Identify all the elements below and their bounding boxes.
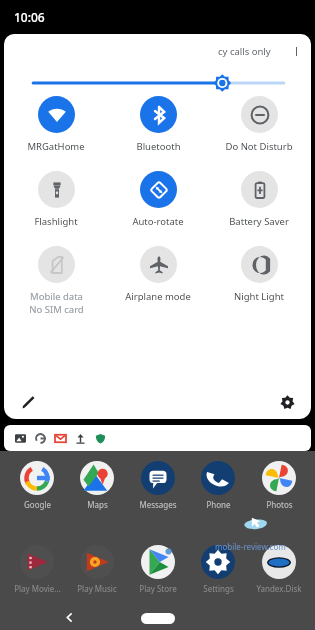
button[interactable]: Maps — [69, 455, 125, 510]
button[interactable]: Home — [141, 613, 175, 624]
button[interactable]: Settings — [275, 390, 299, 414]
button[interactable]: Settings — [190, 539, 246, 594]
staticText: Play Store — [139, 583, 177, 594]
staticText: mobile-review.com — [215, 541, 286, 552]
staticText: Play Movie... — [14, 583, 61, 594]
button[interactable]: Do Not Disturb — [210, 96, 308, 153]
button[interactable]: Photos — [251, 455, 307, 510]
button[interactable]: More options — [289, 44, 303, 58]
staticText: Mobile data — [30, 290, 83, 303]
button[interactable]: MRGatHome — [7, 96, 105, 153]
staticText: MRGatHome — [27, 140, 85, 153]
staticText: Messages — [139, 499, 177, 510]
staticText: Settings — [203, 583, 234, 594]
button[interactable]: Play Movie... — [9, 539, 65, 594]
button[interactable]: Play Store — [130, 539, 186, 594]
button[interactable]: Messages — [130, 455, 186, 510]
staticText: No SIM card — [29, 303, 84, 316]
staticText: Do Not Disturb — [225, 140, 293, 153]
button[interactable]: Auto-rotate — [109, 171, 207, 228]
staticText: Google — [24, 499, 51, 510]
button[interactable]: Flashlight — [7, 171, 105, 228]
button[interactable]: Brightness — [4, 72, 311, 94]
staticText: cy calls only — [218, 45, 271, 58]
staticText: Phone — [206, 499, 231, 510]
button[interactable] — [4, 425, 311, 451]
button[interactable]: Airplane mode — [109, 246, 207, 303]
staticText: Photos — [266, 499, 293, 510]
button[interactable]: Google — [9, 455, 65, 510]
staticText: Play Music — [77, 583, 117, 594]
staticText: Bluetooth — [136, 140, 181, 153]
staticText: Night Light — [234, 290, 284, 303]
staticText: Yandex.Disk — [256, 583, 302, 594]
button[interactable]: Bluetooth — [109, 96, 207, 153]
button[interactable]: Yandex.Disk — [251, 539, 307, 594]
button[interactable]: Play Music — [69, 539, 125, 594]
staticText: Maps — [87, 499, 108, 510]
button[interactable]: Night Light — [210, 246, 308, 303]
button[interactable]: Edit tiles — [16, 390, 40, 414]
button[interactable]: Phone — [190, 455, 246, 510]
staticText: 10:06 — [14, 9, 45, 25]
staticText: Auto-rotate — [132, 215, 184, 228]
staticText: Airplane mode — [125, 290, 191, 303]
staticText: Battery Saver — [229, 215, 289, 228]
button[interactable]: Back — [60, 608, 78, 626]
button[interactable]: Mobile data — [7, 246, 105, 316]
button[interactable]: Battery Saver — [210, 171, 308, 228]
staticText: Flashlight — [34, 215, 78, 228]
